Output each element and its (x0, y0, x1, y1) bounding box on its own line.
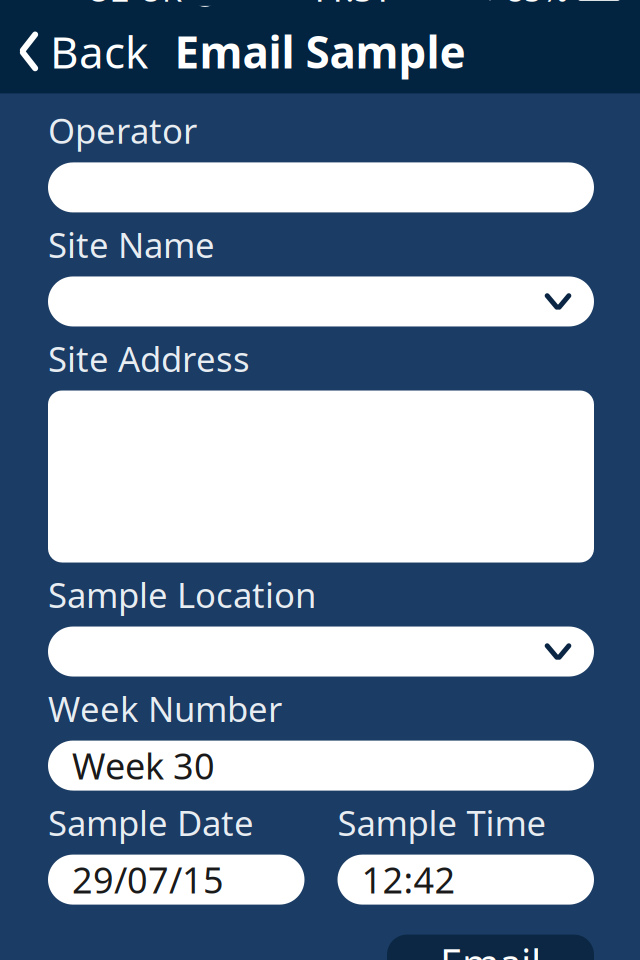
staticText: 29/07/15 (72, 856, 224, 903)
button[interactable]: 12:42 (337, 855, 594, 905)
staticText: Email Sample (174, 22, 465, 81)
button[interactable] (48, 390, 594, 562)
staticText: 85% (506, 0, 569, 11)
staticText: Sample Date (48, 800, 254, 846)
button[interactable] (48, 276, 594, 326)
button[interactable]: Email (387, 935, 594, 960)
staticText: Week Number (48, 685, 282, 731)
staticText: 12:42 (361, 856, 455, 903)
staticText: Back (50, 22, 148, 81)
staticText: Operator (48, 107, 197, 153)
button[interactable]: 29/07/15 (48, 855, 304, 905)
staticText: 11:31 (309, 0, 390, 11)
staticText: Week 30 (72, 742, 215, 789)
staticText: O2-UK (86, 0, 182, 11)
staticText: Sample Location (48, 571, 316, 617)
staticText: Site Name (48, 221, 215, 267)
staticText: Sample Time (337, 800, 546, 846)
staticText: Site Address (48, 335, 250, 381)
button[interactable] (48, 162, 594, 212)
staticText: Email (440, 936, 541, 960)
button[interactable]: Week 30 (48, 741, 594, 791)
button[interactable] (48, 626, 594, 676)
button[interactable]: Back (0, 14, 166, 89)
